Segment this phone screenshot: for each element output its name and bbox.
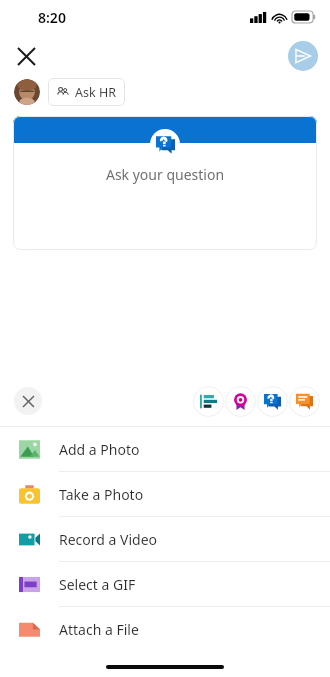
- staticText: Ask your question: [13, 165, 317, 184]
- button[interactable]: Add a Photo: [0, 427, 330, 471]
- button[interactable]: Take a Photo: [0, 472, 330, 516]
- staticText: Select a GIF: [59, 575, 136, 594]
- staticText: Attach a File: [59, 620, 139, 639]
- button[interactable]: Attach a File: [0, 607, 330, 651]
- button[interactable]: Record a Video: [0, 517, 330, 561]
- button[interactable]: Select a GIF: [0, 562, 330, 606]
- button[interactable]: Recognition: [225, 386, 256, 417]
- staticText: Ask HR: [75, 84, 116, 101]
- staticText: Take a Photo: [59, 485, 144, 504]
- staticText: Add a Photo: [59, 440, 140, 459]
- staticText: Record a Video: [59, 530, 158, 549]
- button[interactable]: Close attachments: [14, 387, 42, 415]
- button[interactable]: Ask HR: [48, 78, 125, 106]
- button[interactable]: Poll: [193, 386, 224, 417]
- button[interactable]: Question: [257, 386, 288, 417]
- button[interactable]: Post: [289, 386, 320, 417]
- button[interactable]: Close: [8, 38, 44, 74]
- button[interactable]: Ask your question: [13, 116, 317, 250]
- button[interactable]: Send: [288, 41, 318, 71]
- staticText: 8:20: [38, 8, 66, 27]
